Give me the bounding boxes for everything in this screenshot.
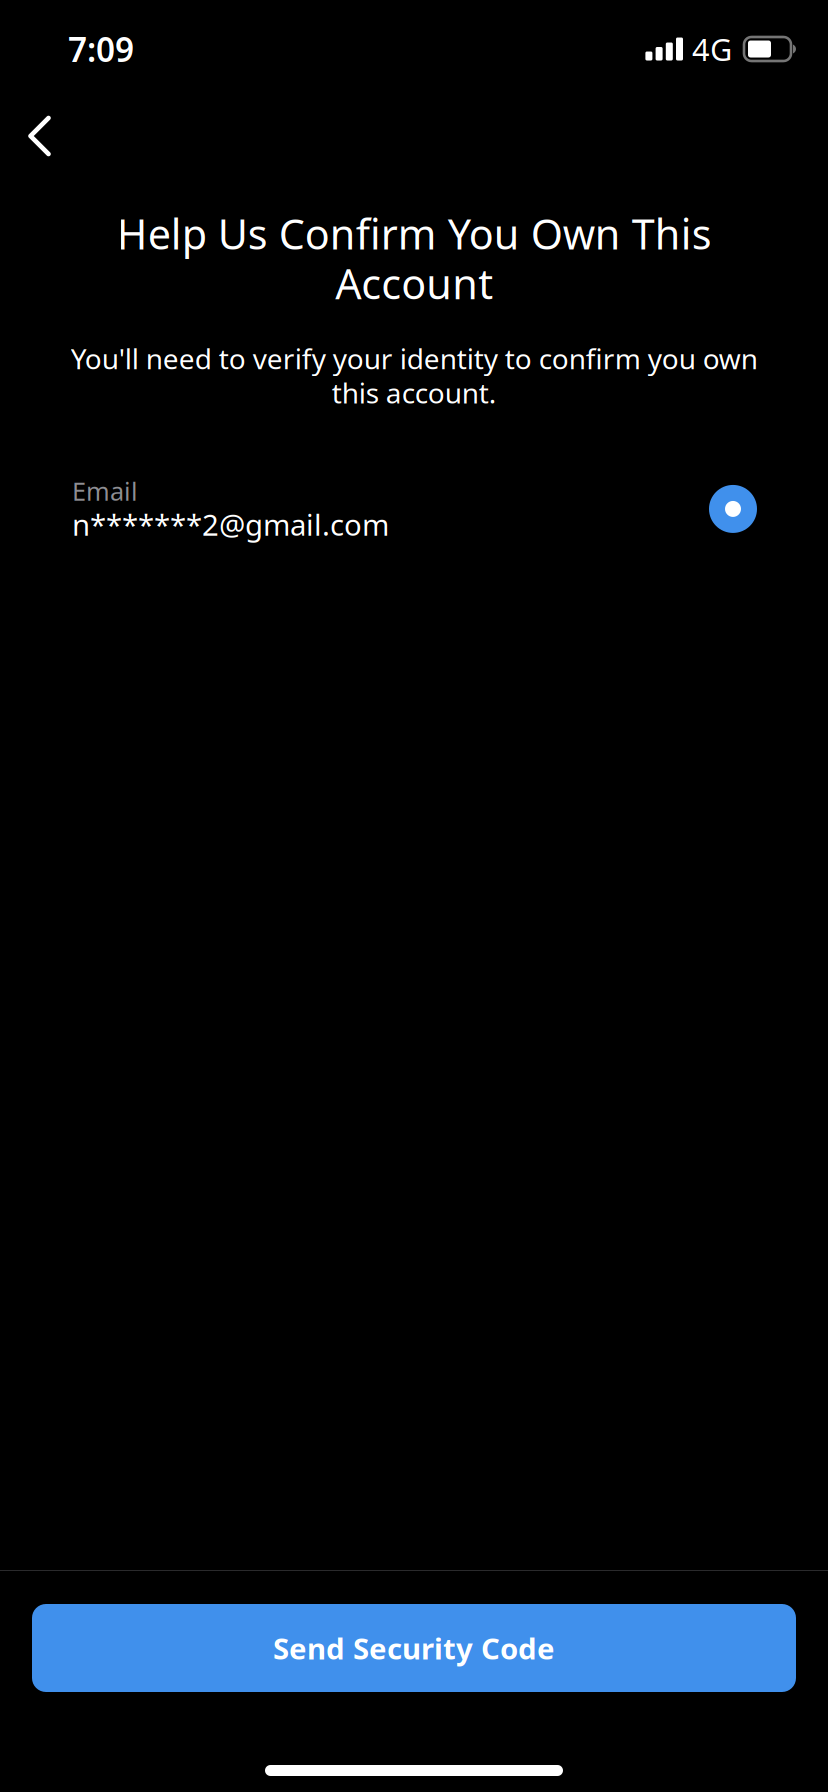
staticText: n*******2@gmail.com — [72, 505, 389, 544]
button[interactable]: Back — [0, 91, 79, 160]
button[interactable]: Send Security Code — [32, 1604, 796, 1692]
button[interactable]: Email — [0, 474, 828, 544]
staticText: Help Us Confirm You Own This Account — [116, 206, 711, 311]
staticText: 7:09 — [68, 27, 134, 71]
staticText: Send Security Code — [273, 1628, 555, 1667]
staticText: Email — [72, 474, 138, 508]
staticText: You'll need to verify your identity to c… — [70, 340, 757, 411]
staticText: 4G — [692, 29, 732, 69]
